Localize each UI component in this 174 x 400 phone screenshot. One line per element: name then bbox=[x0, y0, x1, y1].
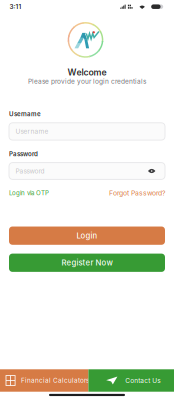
staticText: Welcome bbox=[67, 67, 106, 78]
button[interactable]: Register Now bbox=[9, 254, 165, 272]
button[interactable]: Forgot Password? bbox=[109, 189, 165, 197]
staticText: Please provide your login credentials bbox=[28, 77, 146, 85]
staticText: Password bbox=[9, 150, 38, 158]
staticText: Password bbox=[16, 167, 45, 175]
staticText: 3:11 bbox=[9, 3, 21, 10]
staticText: Contact Us bbox=[125, 376, 160, 384]
button[interactable]: Login bbox=[9, 226, 165, 245]
button[interactable]: Contact Us bbox=[88, 369, 174, 392]
button[interactable]: Login via OTP bbox=[9, 189, 49, 197]
button[interactable]: Financial Calculators bbox=[0, 369, 88, 392]
staticText: Forgot Password? bbox=[109, 189, 165, 197]
staticText: Login bbox=[76, 231, 97, 240]
staticText: Username bbox=[9, 110, 41, 118]
staticText: Register Now bbox=[61, 258, 112, 267]
staticText: Financial Calculators bbox=[21, 377, 89, 384]
staticText: Login via OTP bbox=[9, 189, 49, 197]
staticText: Username bbox=[16, 127, 49, 135]
